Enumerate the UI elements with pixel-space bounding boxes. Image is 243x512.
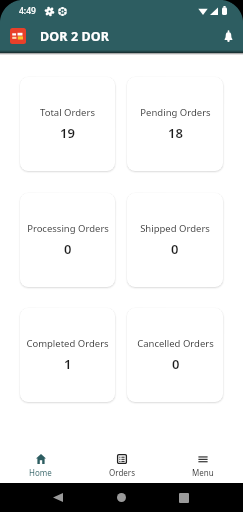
staticText: Total Orders (40, 106, 95, 119)
staticText: Orders (109, 467, 135, 478)
staticText: 19 (60, 124, 75, 142)
button[interactable]: Completed Orders (20, 308, 115, 402)
button[interactable]: Orders (81, 449, 162, 483)
button[interactable]: Processing Orders (20, 193, 115, 287)
staticText: 0 (64, 240, 72, 258)
button[interactable]: Cancelled Orders (127, 308, 223, 402)
button[interactable]: Total Orders (20, 77, 115, 171)
staticText: Pending Orders (140, 106, 211, 119)
staticText: 0 (172, 355, 180, 373)
staticText: 0 (171, 240, 179, 258)
staticText: 18 (168, 124, 183, 142)
staticText: Home (29, 467, 52, 478)
staticText: Processing Orders (27, 222, 109, 235)
staticText: Cancelled Orders (137, 337, 214, 350)
staticText: Completed Orders (26, 337, 109, 350)
staticText: 4:49 (19, 5, 36, 17)
button[interactable]: Notifications (215, 23, 241, 49)
staticText: DOR 2 DOR (40, 28, 110, 45)
staticText: 1 (64, 355, 72, 373)
button[interactable]: Menu (162, 449, 243, 483)
button[interactable]: Home (0, 449, 81, 483)
button[interactable]: Shipped Orders (127, 193, 223, 287)
staticText: Menu (192, 467, 214, 478)
button[interactable]: Pending Orders (127, 77, 223, 171)
staticText: Shipped Orders (140, 222, 210, 235)
